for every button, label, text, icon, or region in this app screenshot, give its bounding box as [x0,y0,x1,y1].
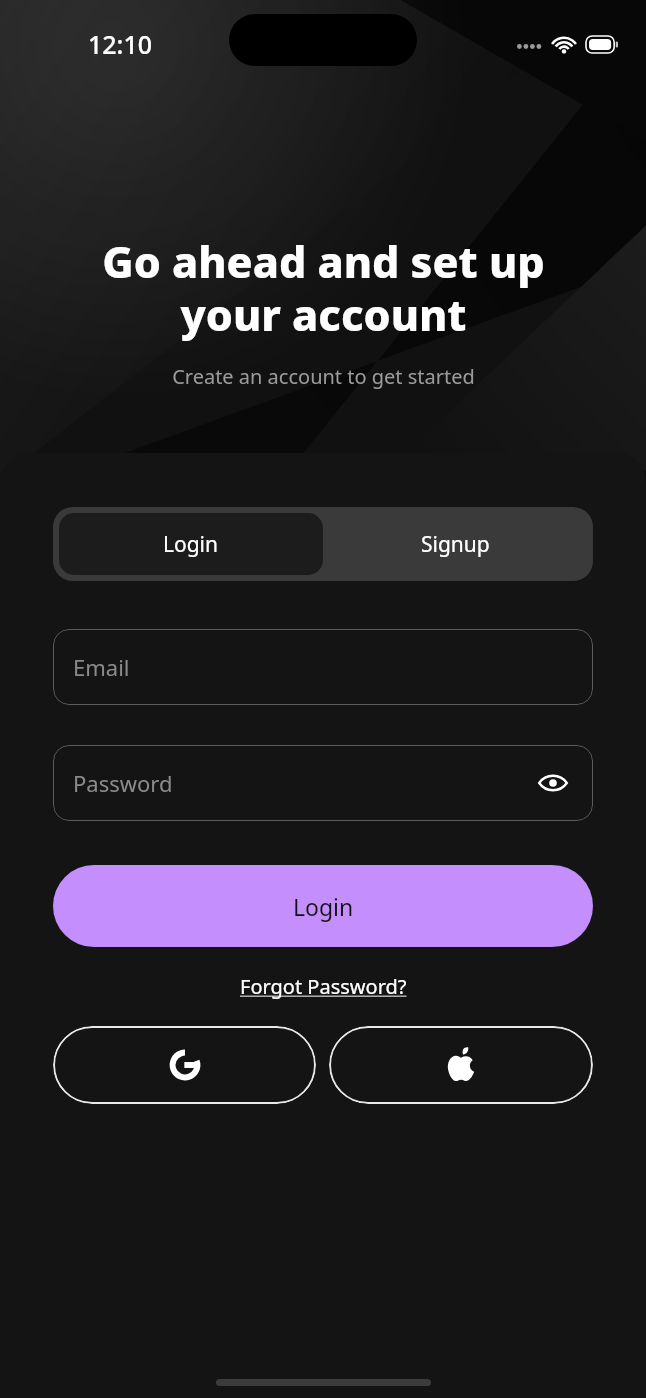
button[interactable]: Signup [323,513,587,575]
button[interactable]: Sign in with Apple [329,1026,593,1104]
button[interactable]: Login [59,513,323,575]
staticText: Signup [421,530,490,559]
button[interactable]: Password [53,745,593,821]
staticText: Login [163,530,219,559]
button[interactable]: Login [53,865,593,947]
staticText: Login [293,891,354,922]
button[interactable]: Forgot Password? [230,969,417,1004]
button[interactable]: Show password [533,763,573,803]
staticText: Email [73,652,130,682]
button[interactable]: Sign in with Google [53,1026,316,1104]
staticText: Go ahead and set up your account [102,232,545,343]
button[interactable]: Email [53,629,593,705]
staticText: 12:10 [88,27,153,61]
staticText: Password [73,768,173,798]
staticText: Create an account to get started [172,363,475,390]
staticText: Forgot Password? [240,973,407,1000]
